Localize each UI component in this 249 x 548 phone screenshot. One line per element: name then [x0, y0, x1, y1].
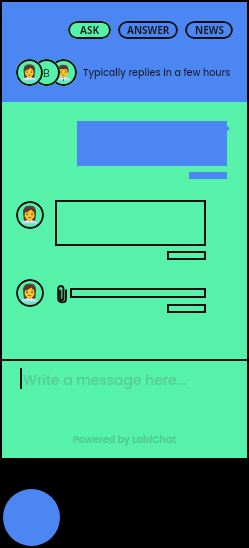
button[interactable]: NEWS — [185, 21, 233, 39]
staticText: Write a message here... — [23, 370, 187, 389]
staticText: 👩‍💼 — [20, 64, 39, 82]
staticText: ANSWER — [127, 23, 170, 37]
staticText: 👩‍💼 — [19, 205, 41, 225]
staticText: 👩‍💼 — [19, 283, 41, 303]
staticText: 👨‍💼 — [54, 64, 73, 82]
button[interactable]: ANSWER — [118, 21, 178, 39]
staticText: Powered by LabiChat — [73, 433, 177, 446]
staticText: ASK — [80, 23, 100, 37]
button[interactable]: Open chat — [3, 489, 60, 546]
staticText: B — [43, 65, 50, 80]
button[interactable]: ASK — [68, 21, 111, 39]
staticText: NEWS — [195, 23, 224, 37]
staticText: Typically replies in a few hours — [83, 66, 231, 79]
